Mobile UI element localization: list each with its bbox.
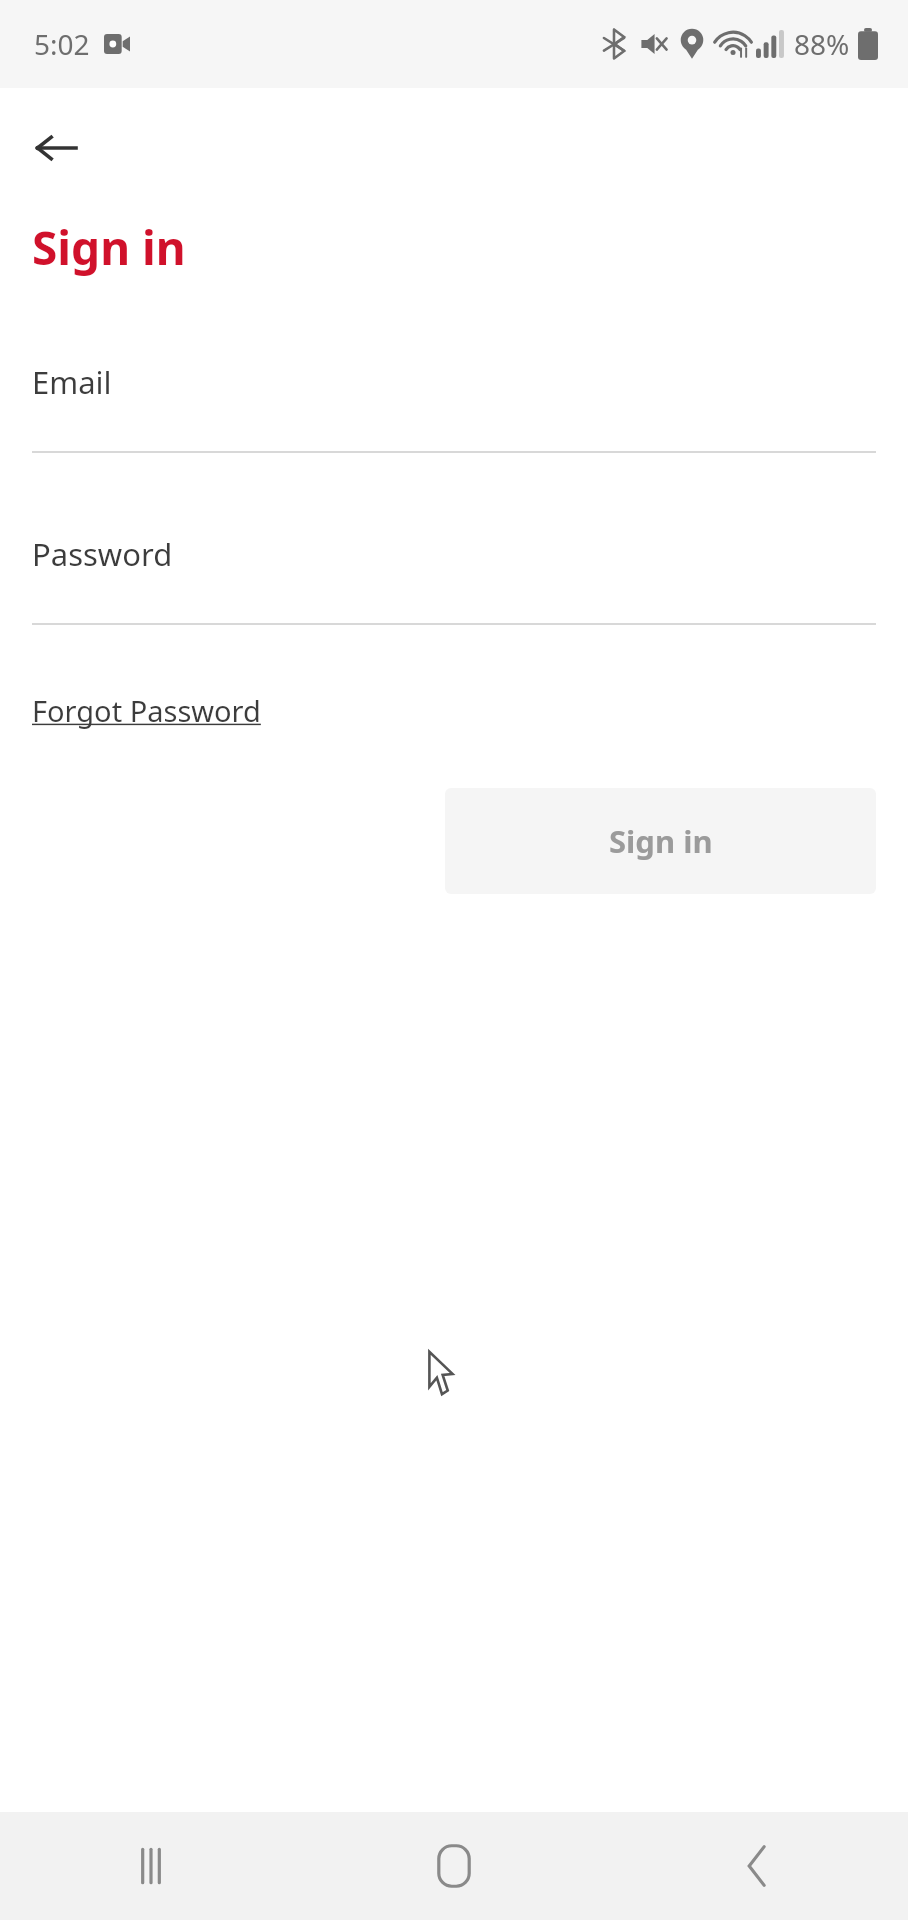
button[interactable]: Email: [32, 361, 876, 453]
staticText: Password: [32, 533, 173, 575]
staticText: 88%: [794, 25, 850, 63]
button[interactable]: Home: [302, 1812, 605, 1920]
button[interactable]: Back: [18, 118, 94, 178]
button[interactable]: Recent apps: [0, 1812, 302, 1920]
staticText: Sign in: [609, 820, 713, 862]
button[interactable]: Forgot Password: [32, 691, 261, 730]
button[interactable]: Password: [32, 533, 876, 625]
staticText: Sign in: [32, 216, 186, 279]
button[interactable]: Sign in: [445, 788, 876, 894]
staticText: 5:02: [34, 25, 90, 63]
button[interactable]: Back: [605, 1812, 908, 1920]
staticText: Email: [32, 361, 112, 403]
